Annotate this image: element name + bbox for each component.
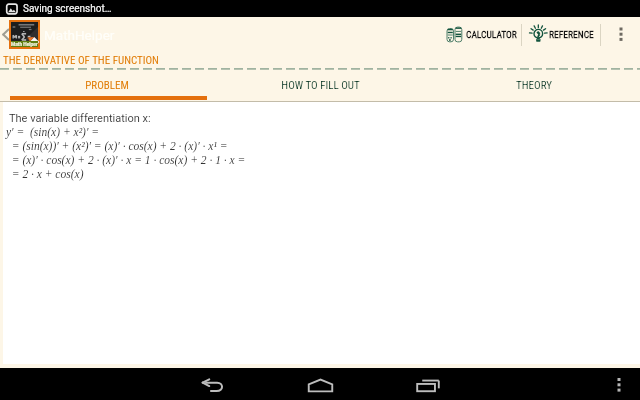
staticText: HOW TO FILL OUT [281,79,360,92]
button[interactable]: Recent apps [374,369,482,400]
button[interactable]: THEORY [427,70,640,101]
button[interactable]: More options [601,17,640,52]
staticText: = (sin(x))′ + (x²)′ = (x)′ · cos(x) + 2 … [6,140,228,153]
button[interactable]: Reference [522,17,600,52]
staticText: Saving screenshot… [23,3,112,15]
button[interactable]: Back [158,369,266,400]
staticText: PROBLEM [85,79,129,92]
staticText: = (x)′ · cos(x) + 2 · (x)′ · x = 1 · cos… [6,154,246,167]
staticText: y′ = (sin(x) + x²)′ = [6,126,100,139]
button[interactable]: Calculator [442,17,521,52]
button[interactable]: Navigate up [0,17,115,52]
staticText: Math Helper [11,41,38,47]
staticText: MathHelper [44,27,115,43]
staticText: REFERENCE [549,29,594,40]
button[interactable]: PROBLEM [0,70,214,101]
staticText: The variable differentiation x: [9,112,151,125]
staticText: THE DERIVATIVE OF THE FUNCTION [3,54,159,67]
staticText: CALCULATOR [466,29,517,40]
button[interactable]: Home [266,369,374,400]
button[interactable]: HOW TO FILL OUT [214,70,427,101]
staticText: THEORY [516,79,552,92]
staticText: = 2 · x + cos(x) [6,168,84,181]
button[interactable]: Menu [598,368,640,400]
